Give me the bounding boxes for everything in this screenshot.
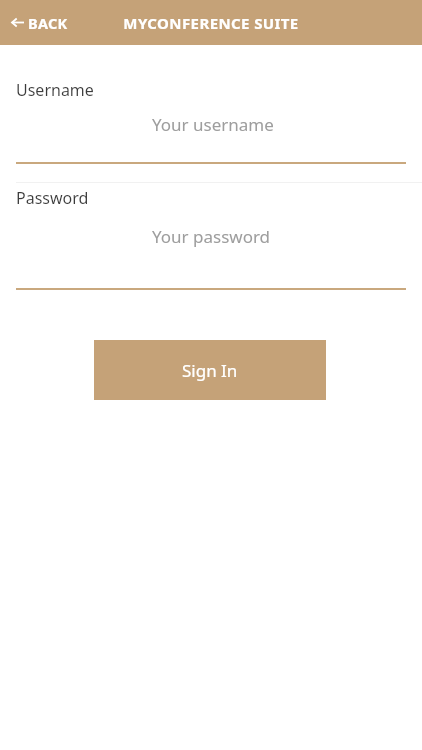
staticText: MYCONFERENCE SUITE [123, 13, 299, 33]
staticText: BACK [28, 13, 68, 33]
staticText: Your password [152, 225, 271, 248]
staticText: Username [16, 79, 94, 101]
staticText: Your username [152, 113, 274, 136]
button[interactable]: Back [0, 0, 80, 45]
button[interactable]: Sign In [94, 340, 326, 400]
staticText: Password [16, 187, 89, 209]
button[interactable]: Your password [0, 212, 422, 290]
staticText: Sign In [182, 359, 238, 382]
button[interactable]: Your username [0, 102, 422, 164]
